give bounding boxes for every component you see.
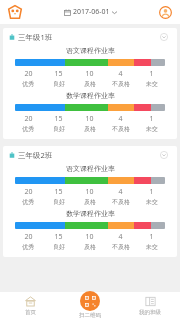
staticText: 10 <box>85 69 94 79</box>
staticText: 10 <box>85 114 94 124</box>
button[interactable]: Account <box>157 4 173 20</box>
staticText: 4 <box>118 69 123 79</box>
button[interactable]: Collapse <box>158 31 170 43</box>
staticText: 15 <box>54 232 63 242</box>
staticText: 4 <box>118 114 123 124</box>
staticText: 优秀 <box>22 125 34 133</box>
staticText: 10 <box>85 232 94 242</box>
staticText: 及格 <box>84 243 96 251</box>
staticText: 未交 <box>146 80 158 88</box>
button[interactable]: 我的班级 <box>120 292 180 320</box>
staticText: 语文课程作业率 <box>66 164 115 173</box>
staticText: 良好 <box>53 198 65 206</box>
staticText: 良好 <box>53 125 65 133</box>
button[interactable]: Collapse <box>158 149 170 161</box>
staticText: 未交 <box>146 125 158 133</box>
staticText: 优秀 <box>22 198 34 206</box>
staticText: 1 <box>149 69 154 79</box>
staticText: 优秀 <box>22 80 34 88</box>
staticText: 数学课程作业率 <box>66 91 115 100</box>
staticText: 不及格 <box>112 198 130 206</box>
staticText: 及格 <box>84 125 96 133</box>
staticText: 良好 <box>53 80 65 88</box>
staticText: 未交 <box>146 243 158 251</box>
staticText: 不及格 <box>112 243 130 251</box>
staticText: 及格 <box>84 198 96 206</box>
staticText: 我的班级 <box>139 309 161 316</box>
staticText: 15 <box>54 187 63 197</box>
staticText: 首页 <box>25 309 36 316</box>
staticText: 三年级1班 <box>18 32 53 42</box>
button[interactable]: 2017-06-01 <box>60 5 121 19</box>
button[interactable]: 三年级1班 <box>3 28 177 139</box>
button[interactable]: 首页 <box>0 292 60 320</box>
staticText: 优秀 <box>22 243 34 251</box>
button[interactable]: Logo <box>6 3 24 21</box>
staticText: 20 <box>24 69 33 79</box>
staticText: 1 <box>149 187 154 197</box>
staticText: 1 <box>149 232 154 242</box>
staticText: 三年级2班 <box>18 150 53 160</box>
staticText: 扫二维码 <box>79 312 101 319</box>
staticText: 20 <box>24 114 33 124</box>
staticText: 4 <box>118 232 123 242</box>
staticText: 10 <box>85 187 94 197</box>
staticText: 1 <box>149 114 154 124</box>
staticText: 不及格 <box>112 125 130 133</box>
staticText: 2017-06-01 <box>73 7 110 17</box>
button[interactable]: 三年级2班 <box>3 146 177 257</box>
staticText: 数学课程作业率 <box>66 209 115 218</box>
button[interactable]: 扫二维码 <box>79 291 101 319</box>
staticText: 良好 <box>53 243 65 251</box>
staticText: 15 <box>54 114 63 124</box>
staticText: 及格 <box>84 80 96 88</box>
staticText: 15 <box>54 69 63 79</box>
staticText: 不及格 <box>112 80 130 88</box>
other: 扫二维码 <box>80 291 100 311</box>
staticText: 4 <box>118 187 123 197</box>
staticText: 20 <box>24 232 33 242</box>
staticText: 语文课程作业率 <box>66 46 115 55</box>
staticText: 未交 <box>146 198 158 206</box>
staticText: 20 <box>24 187 33 197</box>
